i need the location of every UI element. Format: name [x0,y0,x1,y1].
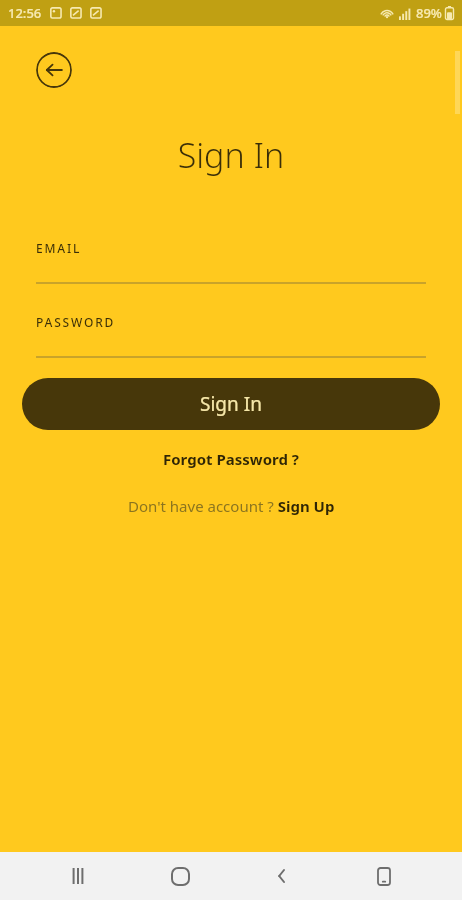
staticText: Don't have account ? Sign Up [128,496,335,516]
staticText: EMAIL [36,240,82,256]
button[interactable]: Recents [54,852,102,900]
button[interactable]: Back [36,52,72,88]
button[interactable]: Forgot Password ? [0,444,462,474]
staticText: Sign In [0,132,462,178]
button[interactable]: Back [258,852,306,900]
button[interactable]: Don't have account ? Sign Up [0,491,462,521]
button[interactable]: Sign In [22,378,440,430]
staticText: 12:56 [8,4,42,22]
staticText: Sign In [200,391,262,417]
staticText: 89% [416,4,442,22]
button[interactable]: Home [156,852,204,900]
button[interactable]: Keyboard [360,852,408,900]
staticText: Forgot Password ? [163,449,299,469]
staticText: PASSWORD [36,314,116,330]
